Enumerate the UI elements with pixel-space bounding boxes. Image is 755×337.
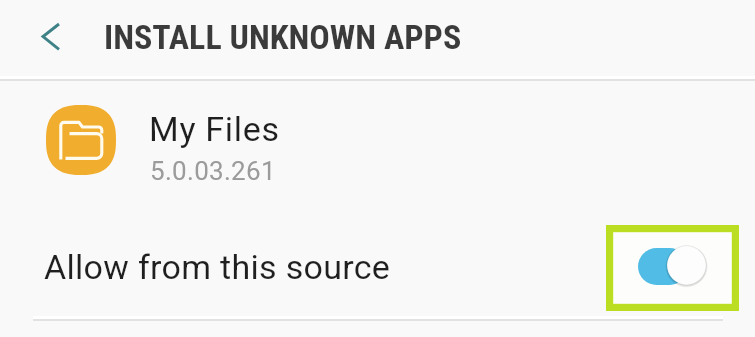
button[interactable]: Allow from this source xyxy=(0,225,755,309)
staticText: INSTALL UNKNOWN APPS xyxy=(104,17,462,57)
staticText: My Files xyxy=(149,109,280,149)
button[interactable]: My Files xyxy=(0,84,755,197)
button[interactable]: Navigate up xyxy=(22,10,78,66)
staticText: Allow from this source xyxy=(44,247,391,287)
staticText: 5.0.03.261 xyxy=(150,156,276,186)
button[interactable]: Allow from this source xyxy=(636,244,708,288)
